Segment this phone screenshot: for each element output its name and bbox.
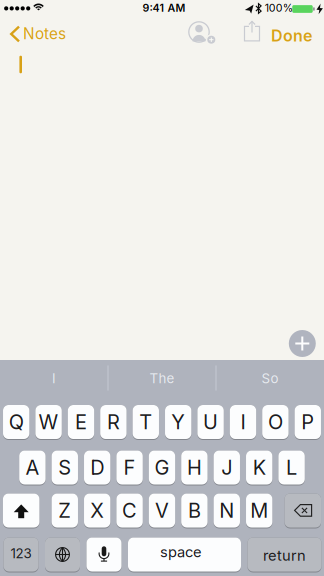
button[interactable]: Q xyxy=(3,405,29,440)
button[interactable]: J xyxy=(214,450,240,485)
button[interactable]: Shift xyxy=(3,493,39,528)
button[interactable]: G xyxy=(149,450,175,485)
staticText: The xyxy=(149,370,174,386)
button[interactable]: A xyxy=(19,450,46,485)
staticText: 9:41 AM xyxy=(142,1,185,14)
staticText: R xyxy=(107,410,120,434)
staticText: W xyxy=(39,410,59,434)
staticText: H xyxy=(187,455,202,480)
button[interactable]: Next keyboard xyxy=(45,537,80,572)
staticText: S xyxy=(58,455,71,480)
staticText: K xyxy=(253,455,266,480)
staticText: T xyxy=(139,410,152,434)
staticText: O xyxy=(268,410,283,434)
button[interactable]: U xyxy=(197,405,224,440)
button[interactable]: H xyxy=(181,450,208,485)
button[interactable]: Y xyxy=(165,405,191,440)
staticText: M xyxy=(250,498,268,523)
staticText: J xyxy=(221,455,232,480)
button[interactable]: space xyxy=(128,537,241,572)
button[interactable]: N xyxy=(214,493,240,528)
staticText: space xyxy=(160,543,202,561)
button[interactable]: return xyxy=(247,537,321,572)
button[interactable]: X xyxy=(84,493,110,528)
button[interactable]: C xyxy=(116,493,143,528)
button[interactable]: E xyxy=(68,405,94,440)
staticText: F xyxy=(124,455,136,480)
button[interactable]: Back to Notes xyxy=(3,19,73,49)
staticText: Q xyxy=(9,410,24,434)
staticText: I xyxy=(240,410,245,434)
button[interactable]: T xyxy=(133,405,159,440)
button[interactable]: Add checklist xyxy=(289,330,316,357)
button[interactable]: The xyxy=(112,361,212,395)
staticText: 100% xyxy=(265,1,293,14)
button[interactable]: Share xyxy=(239,18,265,48)
staticText: C xyxy=(122,498,137,523)
staticText: G xyxy=(154,455,169,480)
staticText: I xyxy=(52,370,56,386)
staticText: return xyxy=(263,547,306,564)
button[interactable]: P xyxy=(295,405,321,440)
button[interactable]: Add people xyxy=(184,18,218,48)
button[interactable]: Done xyxy=(265,21,317,51)
button[interactable]: O xyxy=(262,405,289,440)
staticText: B xyxy=(188,498,201,523)
button[interactable]: Z xyxy=(52,493,78,528)
staticText: P xyxy=(301,410,314,434)
button[interactable]: S xyxy=(52,450,78,485)
staticText: U xyxy=(203,410,218,434)
staticText: N xyxy=(219,498,234,523)
button[interactable]: Dictate xyxy=(86,537,121,572)
button[interactable]: D xyxy=(84,450,110,485)
button[interactable]: B xyxy=(181,493,208,528)
staticText: E xyxy=(75,410,87,434)
staticText: So xyxy=(261,370,278,386)
button[interactable]: L xyxy=(278,450,305,485)
staticText: Y xyxy=(171,410,185,434)
button[interactable]: I xyxy=(230,405,256,440)
staticText: L xyxy=(286,455,297,480)
button[interactable]: F xyxy=(116,450,143,485)
button[interactable]: Note text area xyxy=(19,56,22,73)
staticText: D xyxy=(90,455,104,480)
staticText: Notes xyxy=(23,24,66,43)
button[interactable]: R xyxy=(100,405,127,440)
staticText: X xyxy=(90,498,104,523)
button[interactable]: Delete xyxy=(285,493,321,528)
staticText: Z xyxy=(58,498,71,523)
button[interactable]: So xyxy=(220,361,320,395)
staticText: Done xyxy=(271,26,312,45)
button[interactable]: K xyxy=(246,450,272,485)
staticText: V xyxy=(155,498,169,523)
button[interactable]: V xyxy=(149,493,175,528)
staticText: 123 xyxy=(10,545,31,561)
button[interactable]: W xyxy=(35,405,62,440)
staticText: A xyxy=(25,455,39,480)
button[interactable]: 123 xyxy=(3,537,38,572)
button[interactable]: M xyxy=(246,493,272,528)
